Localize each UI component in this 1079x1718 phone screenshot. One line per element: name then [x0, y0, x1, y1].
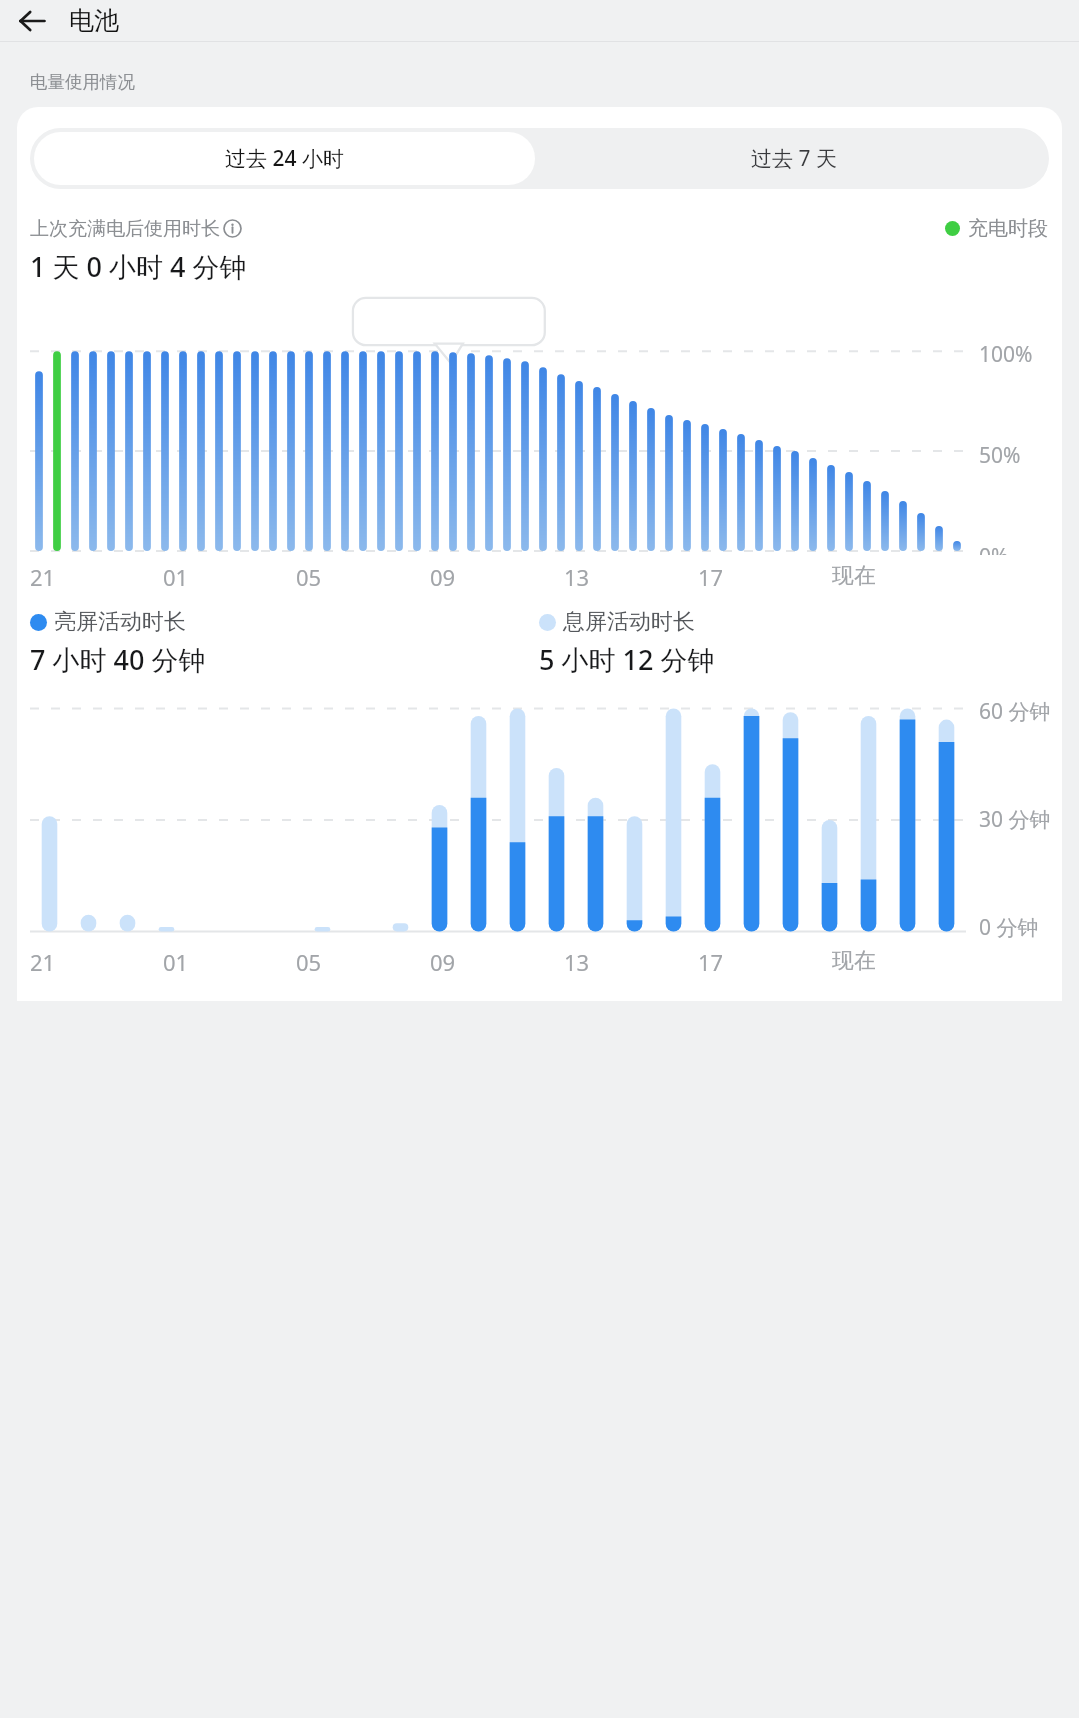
- staticText: 0 分钟: [979, 913, 1039, 940]
- staticText: 息屏活动时长: [563, 608, 695, 636]
- staticText: 21: [30, 947, 56, 977]
- staticText: 现在: [832, 947, 876, 975]
- button[interactable]: 返回: [9, 0, 55, 41]
- staticText: 电池: [69, 5, 119, 36]
- staticText: 100%: [979, 340, 1033, 369]
- staticText: 7 小时 40 分钟: [30, 641, 206, 678]
- staticText: 05: [296, 562, 322, 592]
- button[interactable]: 过去 24 小时: [34, 132, 535, 185]
- staticText: 17: [698, 562, 724, 592]
- staticText: 1 天 0 小时 4 分钟: [30, 248, 247, 285]
- staticText: 过去 7 天: [751, 144, 837, 173]
- staticText: 5 小时 12 分钟: [539, 641, 715, 678]
- staticText: 过去 24 小时: [225, 144, 344, 173]
- staticText: 上次充满电后使用时长: [30, 217, 220, 241]
- staticText: 09: [430, 562, 456, 592]
- staticText: 01: [163, 947, 189, 977]
- staticText: 30 分钟: [979, 805, 1051, 834]
- staticText: 60 分钟: [979, 697, 1051, 726]
- staticText: 17: [698, 947, 724, 977]
- button[interactable]: 过去 7 天: [539, 128, 1049, 189]
- staticText: 0%: [979, 542, 1009, 555]
- staticText: 13: [564, 562, 590, 592]
- staticText: 现在: [832, 562, 876, 590]
- staticText: 50%: [979, 441, 1021, 470]
- staticText: 13: [564, 947, 590, 977]
- staticText: 充电时段: [968, 216, 1048, 241]
- staticText: 05: [296, 947, 322, 977]
- staticText: 21: [30, 562, 56, 592]
- staticText: 09: [430, 947, 456, 977]
- staticText: 电量使用情况: [30, 71, 135, 93]
- staticText: 亮屏活动时长: [54, 608, 186, 636]
- staticText: 01: [163, 562, 189, 592]
